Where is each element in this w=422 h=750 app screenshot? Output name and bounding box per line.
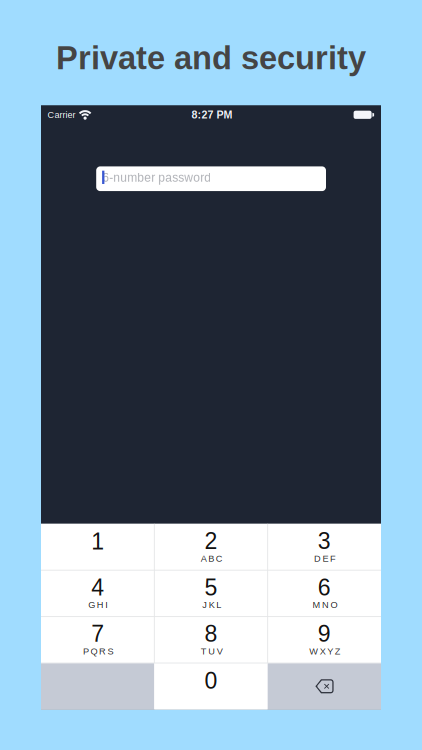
button[interactable]: 3 (268, 524, 381, 570)
staticText: 6 (318, 574, 331, 600)
staticText: 6-number password (102, 171, 211, 184)
staticText: 2 (204, 528, 217, 554)
button[interactable]: 2 (154, 524, 268, 570)
button[interactable]: 1 (41, 524, 154, 570)
staticText: 1 (91, 529, 104, 554)
staticText: 9 (318, 621, 331, 647)
staticText: 5 (204, 574, 217, 600)
button[interactable]: 0 (154, 663, 268, 709)
staticText: PQRS (83, 646, 114, 656)
staticText: GHI (88, 600, 108, 610)
staticText: Carrier (47, 110, 75, 120)
staticText: 7 (91, 621, 104, 647)
staticText: MNO (312, 600, 337, 610)
button[interactable]: 6 (268, 570, 381, 617)
staticText: 4 (91, 574, 104, 600)
button[interactable]: 7 (41, 617, 154, 663)
staticText: 0 (204, 668, 217, 694)
button[interactable]: 8 (154, 617, 268, 663)
button[interactable]: 4 (41, 570, 154, 617)
staticText: Private and security (56, 40, 366, 76)
staticText: 8 (204, 621, 217, 647)
button[interactable]: 9 (268, 617, 381, 663)
button[interactable]: 5 (154, 570, 268, 617)
staticText: DEF (314, 553, 336, 564)
button[interactable]: Delete (268, 663, 381, 709)
staticText: ABC (201, 553, 223, 564)
staticText: 3 (318, 528, 331, 554)
staticText: 8:27 PM (191, 109, 232, 121)
staticText: JKL (202, 600, 221, 610)
staticText: TUV (201, 646, 223, 656)
staticText: WXYZ (309, 646, 341, 656)
